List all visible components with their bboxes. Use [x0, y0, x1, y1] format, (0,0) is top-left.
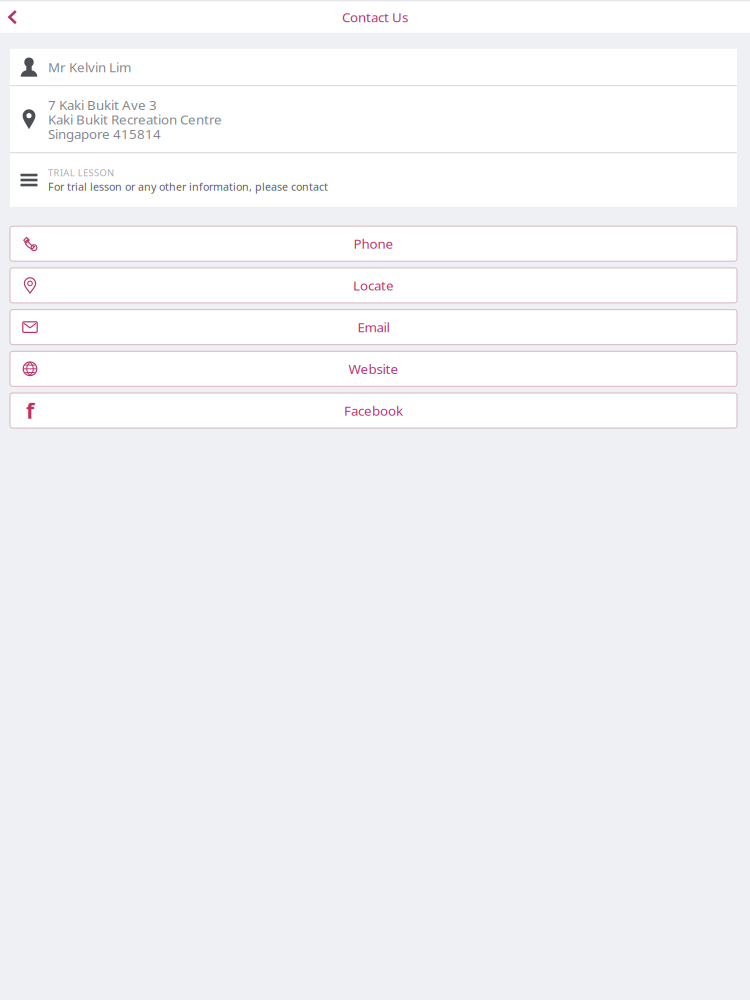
button[interactable]: f: [10, 393, 737, 428]
staticText: Facebook: [344, 402, 403, 419]
staticText: Kaki Bukit Recreation Centre: [48, 112, 222, 126]
staticText: Email: [357, 318, 389, 336]
staticText: Locate: [353, 276, 394, 294]
staticText: Website: [348, 360, 398, 378]
staticText: Phone: [353, 235, 393, 252]
button[interactable]: Website: [10, 351, 737, 386]
staticText: For trial lesson or any other informatio…: [48, 180, 328, 193]
staticText: f: [26, 396, 34, 425]
button[interactable]: Email: [10, 310, 737, 345]
staticText: 7 Kaki Bukit Ave 3: [48, 97, 157, 112]
staticText: Mr Kelvin Lim: [48, 58, 131, 76]
staticText: Contact Us: [342, 8, 408, 26]
button[interactable]: Phone: [10, 226, 737, 261]
button[interactable]: Back: [0, 1, 29, 33]
staticText: TRIAL LESSON: [48, 167, 114, 178]
staticText: Singapore 415814: [48, 127, 161, 141]
button[interactable]: Locate: [10, 268, 737, 303]
